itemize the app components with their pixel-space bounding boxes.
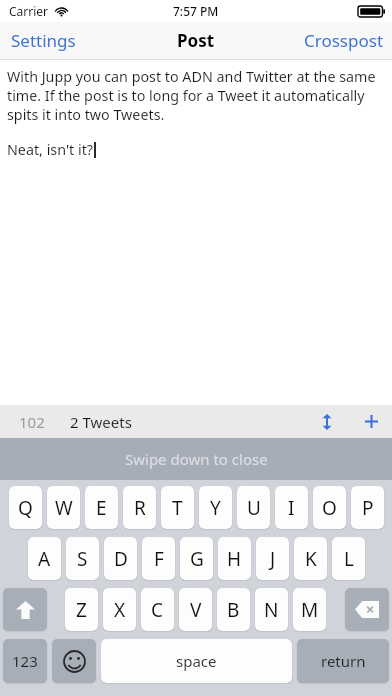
staticText: Neat, isn't it? xyxy=(7,140,94,159)
button[interactable]: T xyxy=(161,486,194,529)
button[interactable]: Settings xyxy=(0,22,87,59)
staticText: T xyxy=(172,495,183,521)
staticText: Q xyxy=(18,495,33,521)
staticText: Post xyxy=(177,29,215,52)
button[interactable]: Emoji keyboard xyxy=(52,639,96,683)
button[interactable]: space xyxy=(101,639,292,683)
button[interactable]: Add tweet xyxy=(356,411,387,432)
staticText: 2 Tweets xyxy=(70,412,132,432)
button[interactable]: R xyxy=(123,486,156,529)
button[interactable]: D xyxy=(104,537,137,580)
staticText: Settings xyxy=(11,29,76,52)
staticText: G xyxy=(190,546,204,572)
staticText: D xyxy=(114,546,128,572)
button[interactable]: F xyxy=(142,537,175,580)
button[interactable]: Reorder tweets xyxy=(311,410,343,434)
staticText: P xyxy=(362,495,374,521)
button[interactable]: X xyxy=(103,588,136,631)
button[interactable]: E xyxy=(85,486,118,529)
button[interactable]: C xyxy=(141,588,174,631)
staticText: B xyxy=(227,597,240,623)
staticText: R xyxy=(134,495,146,521)
button[interactable]: S xyxy=(66,537,99,580)
staticText: Crosspost xyxy=(304,29,384,52)
staticText: N xyxy=(264,597,279,623)
staticText: Y xyxy=(210,495,221,521)
staticText: U xyxy=(247,495,261,521)
staticText: 102 xyxy=(19,412,45,432)
button[interactable]: Crosspost xyxy=(296,22,392,59)
button[interactable]: Y xyxy=(199,486,232,529)
staticText: M xyxy=(301,597,319,623)
button[interactable]: N xyxy=(255,588,288,631)
button[interactable]: return xyxy=(297,639,389,683)
button[interactable]: W xyxy=(47,486,80,529)
staticText: A xyxy=(38,546,51,572)
staticText: W xyxy=(55,495,73,521)
staticText: 7:57 PM xyxy=(173,3,219,19)
staticText: I xyxy=(288,495,295,521)
staticText: return xyxy=(321,651,366,671)
button[interactable]: A xyxy=(28,537,61,580)
button[interactable]: K xyxy=(294,537,327,580)
staticText: H xyxy=(227,546,242,572)
button[interactable]: 123 xyxy=(3,639,47,683)
staticText: J xyxy=(270,546,276,572)
button[interactable]: With Jupp you can post to ADN and Twitte… xyxy=(0,60,392,405)
button[interactable]: V xyxy=(179,588,212,631)
staticText: Carrier xyxy=(9,3,49,19)
button[interactable]: J xyxy=(256,537,289,580)
staticText: C xyxy=(151,597,164,623)
button[interactable]: Shift xyxy=(3,588,47,631)
staticText: K xyxy=(305,546,317,572)
button[interactable]: Q xyxy=(9,486,42,529)
button[interactable]: B xyxy=(217,588,250,631)
button[interactable]: U xyxy=(237,486,270,529)
button[interactable]: M xyxy=(293,588,326,631)
staticText: space xyxy=(176,651,217,671)
staticText: V xyxy=(190,597,202,623)
staticText: L xyxy=(344,546,354,572)
staticText: E xyxy=(96,495,107,521)
button[interactable]: Swipe down to close xyxy=(0,438,392,480)
button[interactable]: Backspace xyxy=(345,588,389,631)
button[interactable]: G xyxy=(180,537,213,580)
button[interactable]: L xyxy=(332,537,365,580)
staticText: Z xyxy=(76,597,87,623)
staticText: O xyxy=(322,495,337,521)
staticText: With Jupp you can post to ADN and Twitte… xyxy=(7,67,385,124)
staticText: Swipe down to close xyxy=(125,449,268,469)
staticText: F xyxy=(154,546,164,572)
button[interactable]: I xyxy=(275,486,308,529)
button[interactable]: Z xyxy=(65,588,98,631)
button[interactable]: H xyxy=(218,537,251,580)
button[interactable]: P xyxy=(351,486,384,529)
button[interactable]: O xyxy=(313,486,346,529)
staticText: X xyxy=(114,597,126,623)
staticText: 123 xyxy=(12,651,38,671)
staticText: S xyxy=(77,546,88,572)
